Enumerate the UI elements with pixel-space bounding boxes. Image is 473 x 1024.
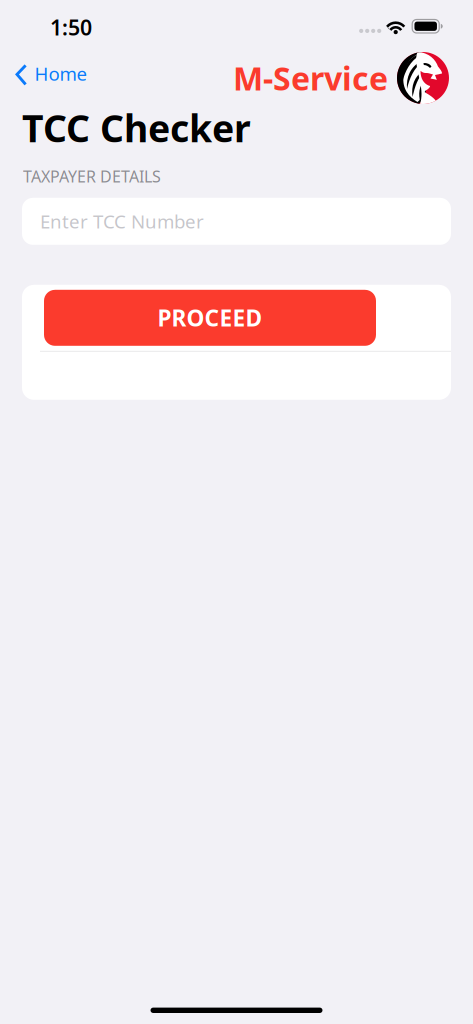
staticText: 1:50 xyxy=(50,13,92,41)
staticText: TAXPAYER DETAILS xyxy=(23,166,161,187)
staticText: PROCEED xyxy=(157,303,262,333)
button[interactable]: PROCEED xyxy=(44,290,376,346)
staticText: TCC Checker xyxy=(22,103,251,153)
staticText: Home xyxy=(34,61,87,86)
button[interactable]: Enter TCC Number xyxy=(22,198,451,245)
button[interactable]: Home xyxy=(0,54,97,93)
staticText: M-Service xyxy=(233,57,388,99)
staticText: Enter TCC Number xyxy=(40,209,204,234)
